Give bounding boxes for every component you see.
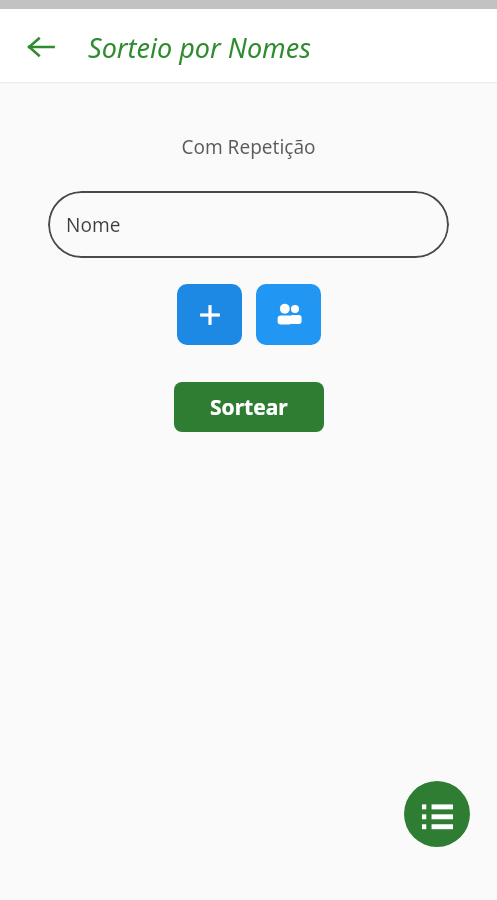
- button[interactable]: Ver lista: [404, 781, 470, 847]
- button[interactable]: Sortear: [174, 382, 324, 432]
- staticText: Sortear: [210, 393, 288, 422]
- staticText: Com Repetição: [181, 134, 316, 160]
- button[interactable]: Back: [16, 22, 66, 72]
- button[interactable]: Lista de nomes: [256, 284, 321, 345]
- staticText: Nome: [66, 212, 121, 238]
- button[interactable]: Nome: [48, 191, 449, 258]
- staticText: Sorteio por Nomes: [88, 29, 311, 66]
- button[interactable]: Adicionar nome: [177, 284, 242, 345]
